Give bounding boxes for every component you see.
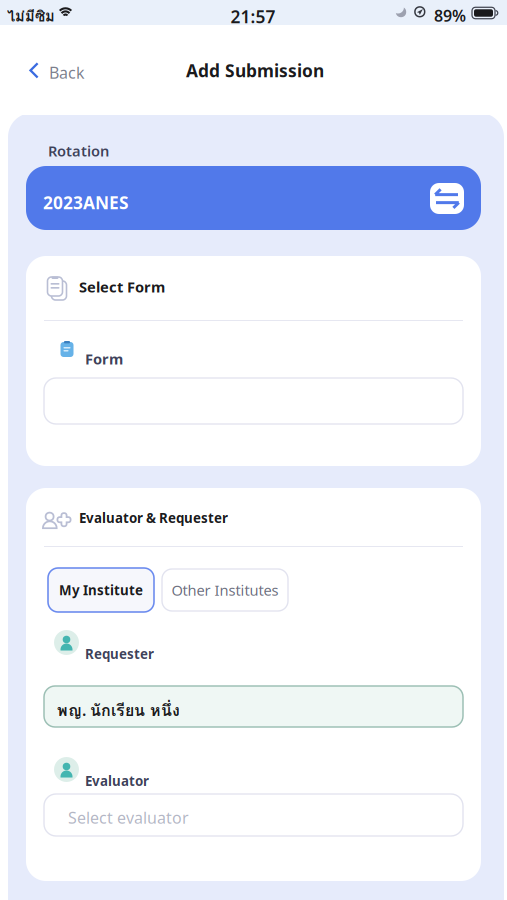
button[interactable]: Change rotation	[430, 183, 464, 214]
staticText: Rotation	[48, 141, 109, 160]
button[interactable]: Other Institutes	[162, 569, 288, 611]
button[interactable]: Select evaluator	[44, 794, 463, 836]
staticText: Back	[49, 62, 85, 83]
staticText: ไม่มีซิม	[7, 5, 55, 28]
staticText: Evaluator & Requester	[79, 509, 228, 527]
staticText: Requester	[85, 645, 154, 663]
staticText: Select evaluator	[68, 807, 189, 828]
button[interactable]: My Institute	[48, 568, 154, 612]
button[interactable]: 2023ANES	[26, 166, 481, 230]
button[interactable]: Form	[44, 378, 463, 424]
staticText: Add Submission	[186, 59, 324, 82]
button[interactable]: Back	[28, 52, 98, 92]
staticText: Form	[85, 349, 123, 368]
staticText: Other Institutes	[171, 580, 278, 600]
staticText: 89%	[434, 5, 466, 26]
button[interactable]: พญ. นักเรียน หนึ่ง	[44, 686, 463, 727]
staticText: พญ. นักเรียน หนึ่ง	[57, 698, 180, 723]
staticText: Evaluator	[85, 772, 149, 790]
staticText: 2023ANES	[43, 191, 129, 214]
staticText: My Institute	[59, 581, 143, 599]
staticText: 21:57	[230, 5, 275, 28]
staticText: Select Form	[79, 277, 165, 296]
